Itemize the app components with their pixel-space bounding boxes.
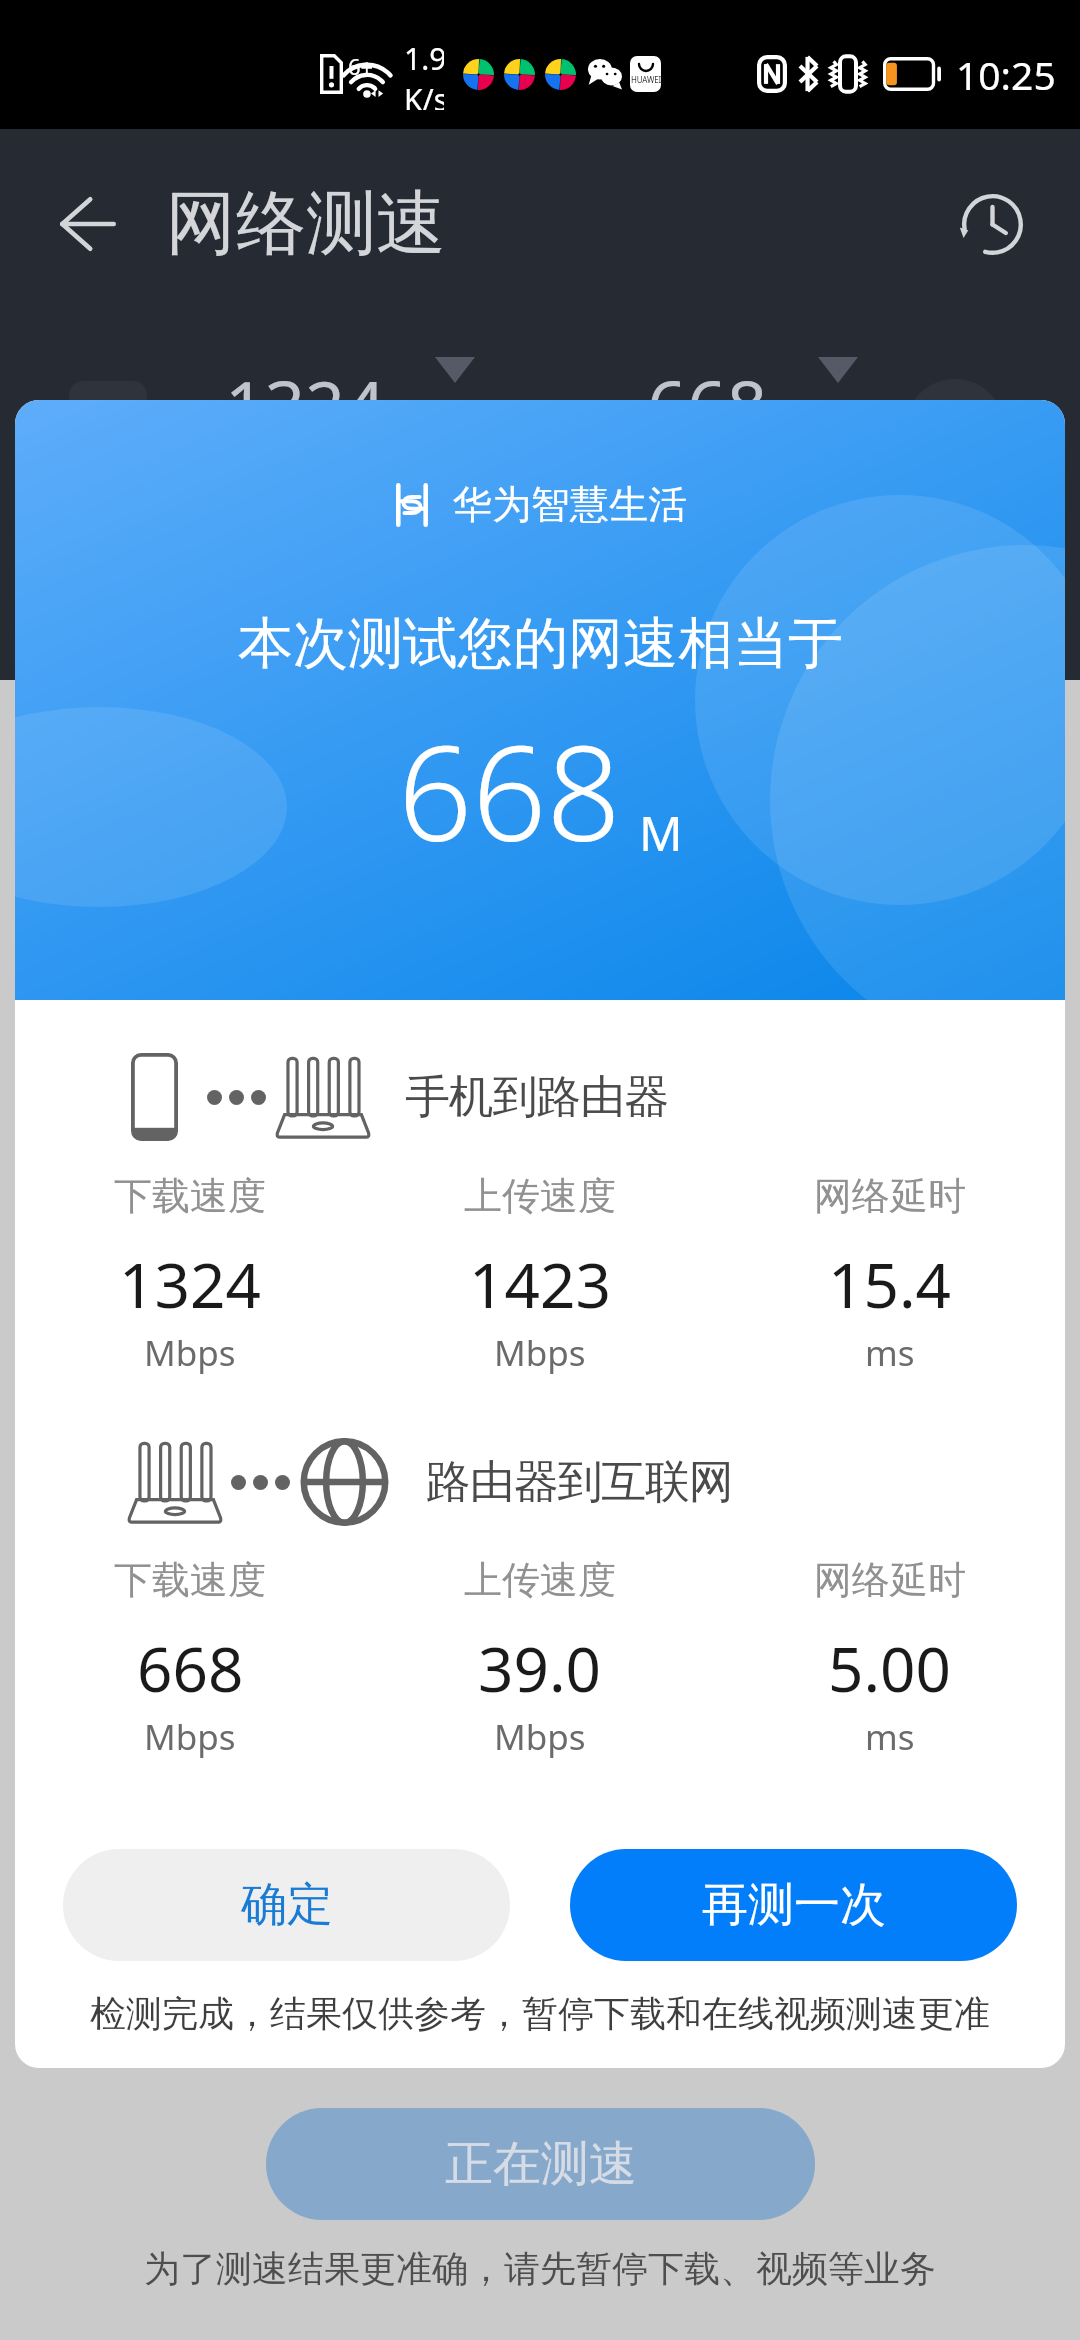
staticText: 确定 [241, 1876, 333, 1934]
button[interactable]: Back [42, 178, 134, 270]
staticText: HUAWEI [631, 74, 661, 85]
staticText: Mbps [494, 1329, 586, 1377]
staticText: 华为智慧生活 [453, 480, 687, 529]
staticText: 路由器到互联网 [426, 1454, 733, 1511]
staticText: Mbps [798, 393, 877, 434]
staticText: 1.9 [404, 38, 444, 79]
staticText: 网络延时 [814, 1172, 966, 1220]
staticText: ms [865, 1329, 915, 1377]
staticText: 668 [647, 357, 768, 452]
staticText: 为了测速结果更准确，请先暂停下载、视频等业务 [144, 2246, 936, 2291]
staticText: Mbps [144, 1713, 236, 1761]
staticText: 39.0 [478, 1626, 602, 1710]
button[interactable]: 正在测速 [266, 2108, 815, 2220]
staticText: 再测一次 [702, 1876, 886, 1934]
staticText: 1324 [225, 357, 386, 452]
staticText: 5.00 [828, 1626, 952, 1710]
staticText: 668 [398, 702, 621, 879]
staticText: 668 [137, 1626, 244, 1710]
staticText: 上传速度 [464, 1172, 616, 1220]
staticText: 正在测速 [445, 2134, 637, 2194]
staticText: 6+ [348, 51, 374, 81]
staticText: 手机到路由器 [405, 1069, 668, 1126]
staticText: 15.4 [828, 1242, 952, 1326]
staticText: 1324 [119, 1242, 261, 1326]
staticText: 10:25 [956, 48, 1056, 101]
staticText: M [639, 800, 683, 865]
staticText: Mbps [144, 1329, 236, 1377]
staticText: 下载速度 [114, 1172, 266, 1220]
button[interactable]: 再测一次 [570, 1849, 1017, 1961]
staticText: 本次测试您的网速相当于 [238, 609, 843, 678]
staticText: Mbps [494, 1713, 586, 1761]
button[interactable]: History [946, 178, 1038, 270]
staticText: K/s [404, 79, 444, 110]
staticText: 1423 [469, 1242, 611, 1326]
staticText: 上传速度 [464, 1556, 616, 1604]
staticText: 下载速度 [114, 1556, 266, 1604]
staticText: 网络延时 [814, 1556, 966, 1604]
staticText: ms [865, 1713, 915, 1761]
button[interactable]: 确定 [63, 1849, 510, 1961]
staticText: 检测完成，结果仅供参考，暂停下载和在线视频测速更准 [90, 1991, 990, 2036]
staticText: 网络测速 [166, 180, 446, 268]
staticText: Mbps [415, 393, 494, 434]
